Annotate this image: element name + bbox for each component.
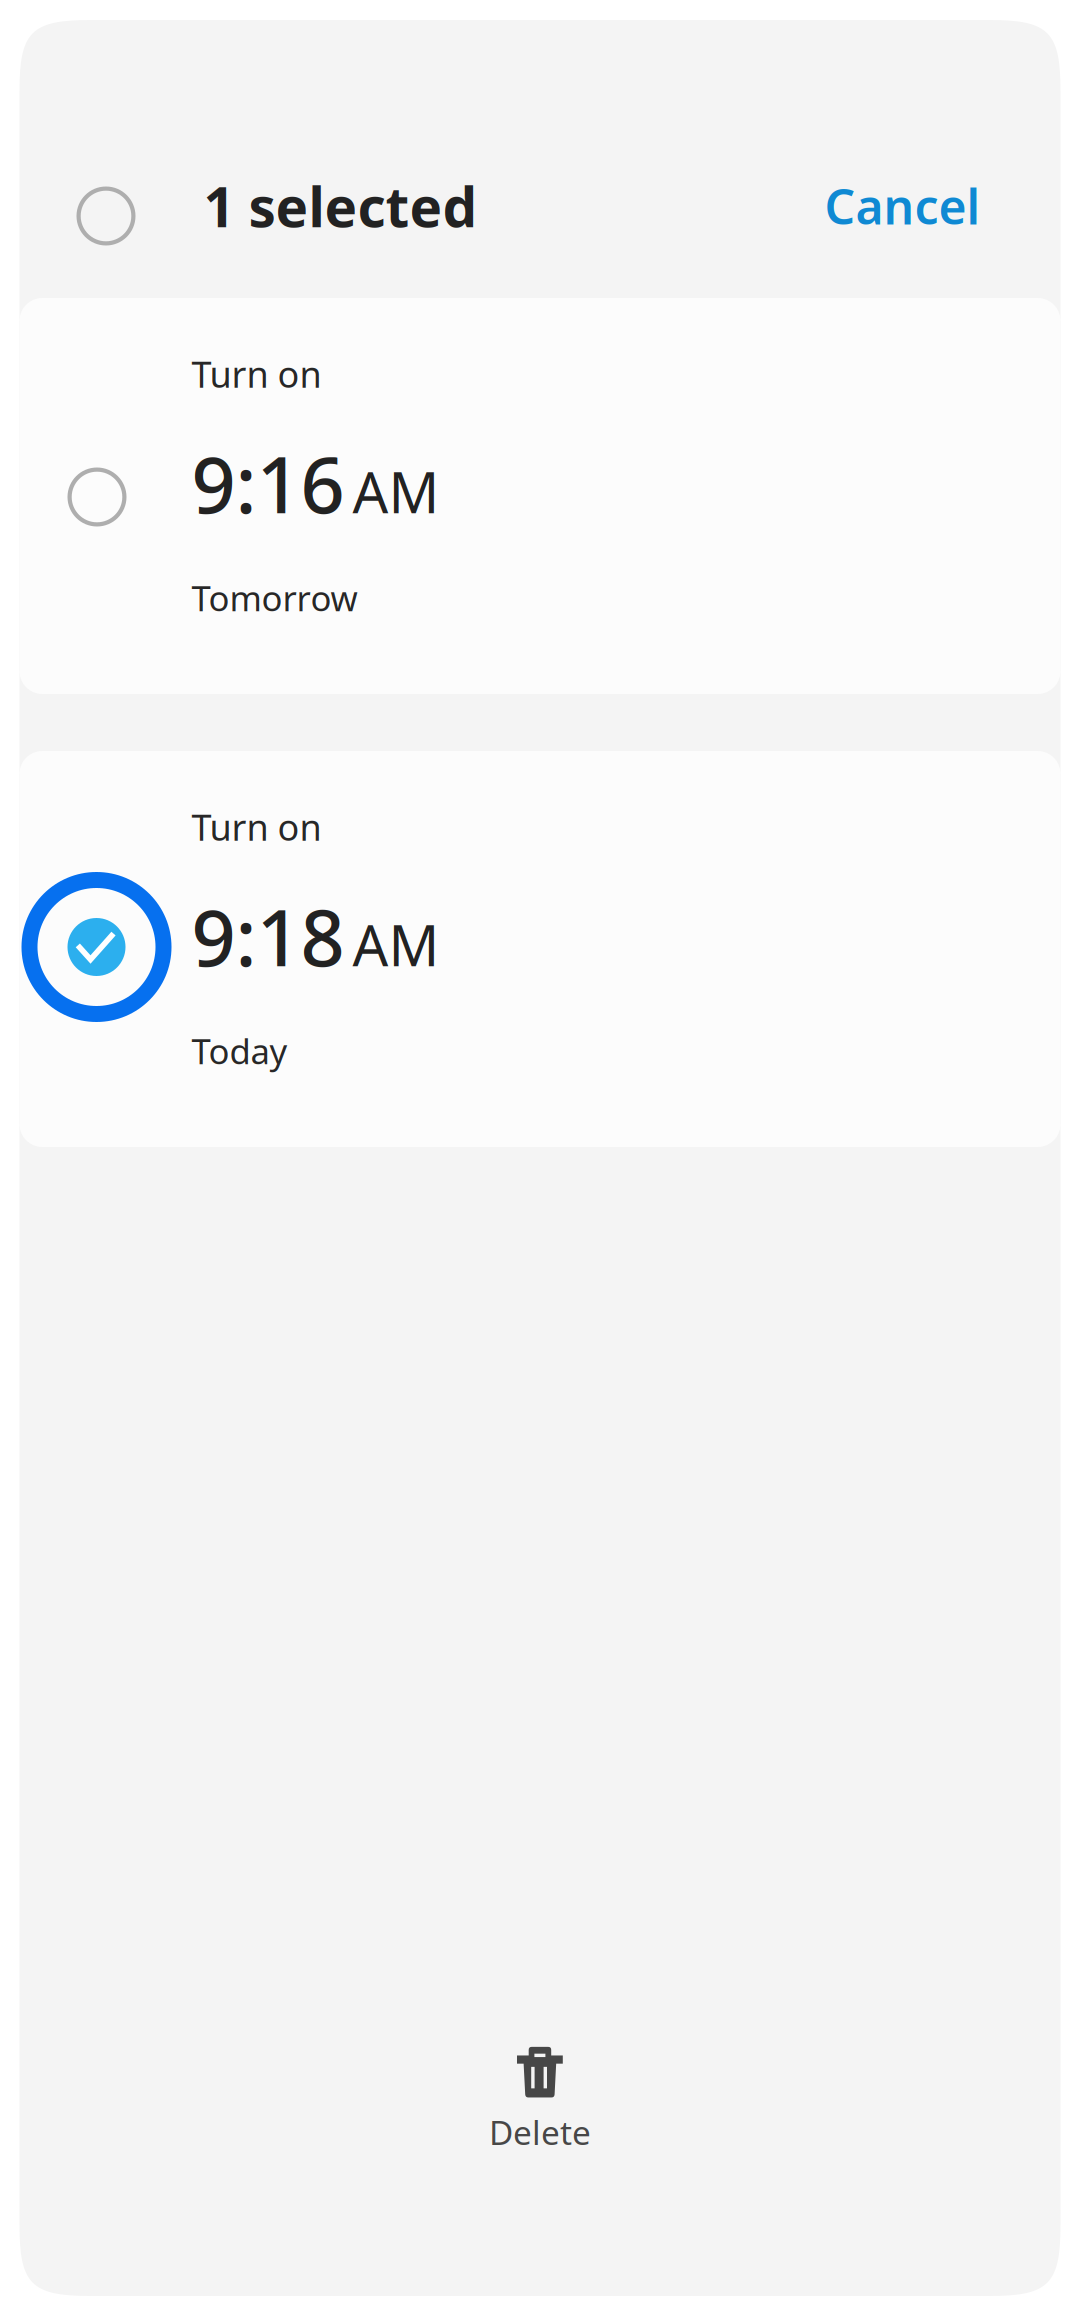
staticText: Delete — [489, 2110, 591, 2154]
staticText: Cancel — [824, 174, 980, 238]
staticText: AM — [352, 454, 439, 529]
staticText: AM — [352, 907, 439, 982]
staticText: 9:16 — [191, 432, 344, 535]
staticText: 1 selected — [203, 170, 477, 242]
staticText: Turn on — [191, 803, 321, 851]
button[interactable]: Delete — [390, 2052, 690, 2149]
button[interactable]: Turn on — [19, 298, 1060, 694]
button[interactable]: Cancel — [824, 171, 1060, 241]
staticText: 9:18 — [191, 885, 344, 988]
button[interactable]: 1 selected — [19, 171, 477, 241]
button[interactable]: Turn on — [19, 751, 1060, 1147]
staticText: Tomorrow — [191, 575, 357, 621]
staticText: Turn on — [191, 350, 321, 398]
staticText: Today — [191, 1028, 287, 1074]
